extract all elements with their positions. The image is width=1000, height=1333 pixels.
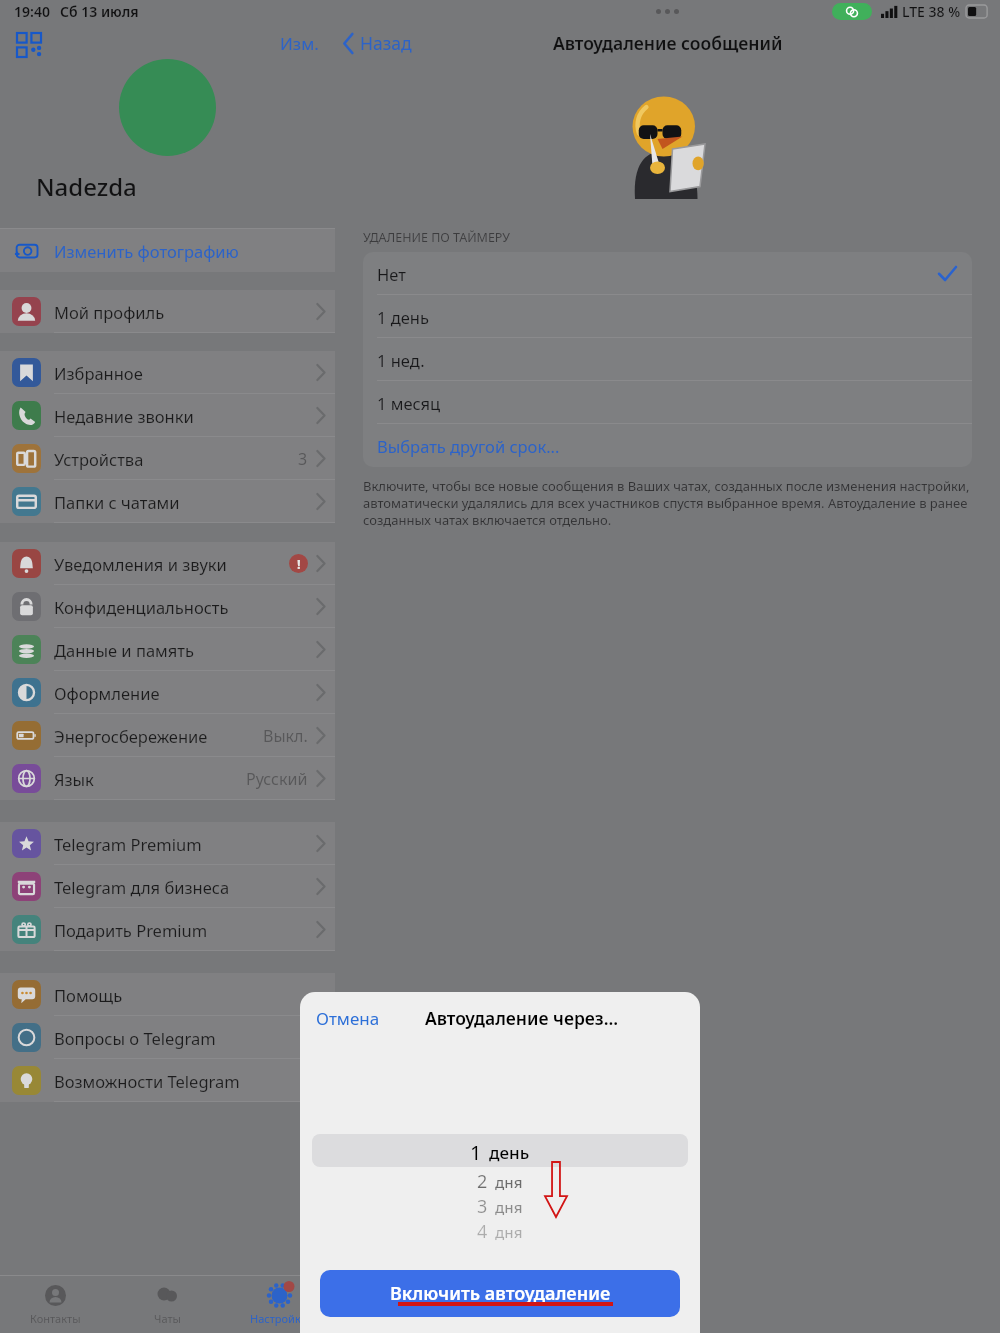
staticText: LTE 38 %	[902, 2, 961, 21]
button[interactable]: Контакты	[0, 1275, 111, 1333]
button[interactable]: 1 месяц	[363, 381, 972, 424]
button[interactable]: Уведомления и звуки	[0, 542, 335, 585]
staticText: 4	[477, 1219, 488, 1244]
button[interactable]: Чаты	[111, 1275, 223, 1333]
button[interactable]: Назад	[343, 31, 412, 55]
staticText: 3	[298, 448, 308, 470]
staticText: Изменить фотографию	[54, 240, 239, 262]
staticText: 1 месяц	[377, 392, 441, 414]
staticText: 1 нед.	[377, 349, 425, 371]
button[interactable]: 2	[477, 1169, 523, 1194]
staticText: 2	[477, 1169, 488, 1194]
staticText: Энергосбережение	[54, 725, 263, 747]
button[interactable]: Нет	[363, 252, 972, 295]
button[interactable]: Изменить фотографию	[0, 229, 335, 272]
button[interactable]: Настройки	[223, 1275, 335, 1333]
staticText: Включить автоудаление	[390, 1281, 611, 1306]
staticText: Контакты	[30, 1311, 81, 1326]
button[interactable]: Вопросы о Telegram	[0, 1016, 335, 1059]
staticText: Назад	[360, 31, 412, 55]
button[interactable]: Недавние звонки	[0, 394, 335, 437]
staticText: Помощь	[54, 984, 325, 1006]
button[interactable]: Папки с чатами	[0, 480, 335, 523]
staticText: 3	[477, 1194, 488, 1219]
staticText: 1 день	[377, 306, 429, 328]
button[interactable]: Избранное	[0, 351, 335, 394]
staticText: Nadezda	[36, 170, 137, 203]
button[interactable]: Отмена	[316, 1007, 380, 1030]
button[interactable]: Возможности Telegram	[0, 1059, 335, 1102]
staticText: Чаты	[154, 1311, 181, 1326]
button[interactable]: 4	[477, 1219, 523, 1244]
staticText: Уведомления и звуки	[54, 553, 289, 575]
staticText: дня	[495, 1222, 523, 1242]
staticText: Telegram Premium	[54, 833, 316, 855]
button[interactable]	[119, 59, 216, 156]
staticText: Язык	[54, 768, 246, 790]
staticText: Папки с чатами	[54, 491, 316, 513]
staticText: Автоудаление через...	[425, 1006, 619, 1030]
button[interactable]: Изм.	[280, 32, 319, 55]
staticText: дня	[495, 1172, 523, 1192]
staticText: 1	[470, 1139, 482, 1166]
button[interactable]: Мой профиль	[0, 290, 335, 333]
staticText: Выбрать другой срок...	[377, 435, 560, 457]
button[interactable]: Подарить Premium	[0, 908, 335, 951]
staticText: дня	[495, 1197, 523, 1217]
button[interactable]: Выбрать другой срок...	[363, 424, 972, 467]
staticText: Автоудаление сообщений	[553, 31, 783, 55]
button[interactable]: Telegram Premium	[0, 822, 335, 865]
staticText: !	[297, 555, 301, 573]
button[interactable]: Энергосбережение	[0, 714, 335, 757]
button[interactable]: Telegram для бизнеса	[0, 865, 335, 908]
button[interactable]: Оформление	[0, 671, 335, 714]
staticText: Русский	[246, 768, 308, 790]
staticText: Избранное	[54, 362, 316, 384]
button[interactable]: 1 день	[363, 295, 972, 338]
button[interactable]: Включить автоудаление	[320, 1270, 680, 1317]
staticText: Включите, чтобы все новые сообщения в Ва…	[363, 477, 970, 529]
button[interactable]: Устройства	[0, 437, 335, 480]
button[interactable]: Конфиденциальность	[0, 585, 335, 628]
staticText: Подарить Premium	[54, 919, 316, 941]
staticText: Нет	[377, 263, 406, 285]
button[interactable]: 1	[470, 1136, 530, 1169]
button[interactable]: 3	[477, 1194, 523, 1219]
staticText: Мой профиль	[54, 301, 316, 323]
staticText: Telegram для бизнеса	[54, 876, 316, 898]
staticText: Отмена	[316, 1007, 380, 1030]
staticText: Данные и память	[54, 639, 316, 661]
button[interactable]: Помощь	[0, 973, 335, 1016]
staticText: Сб 13 июля	[60, 2, 139, 21]
button[interactable]: Язык	[0, 757, 335, 800]
staticText: Конфиденциальность	[54, 596, 316, 618]
staticText: Изм.	[280, 32, 319, 55]
staticText: Настройки	[250, 1311, 308, 1326]
button[interactable]: Данные и память	[0, 628, 335, 671]
staticText: Возможности Telegram	[54, 1070, 325, 1092]
staticText: Вопросы о Telegram	[54, 1027, 325, 1049]
staticText: Недавние звонки	[54, 405, 316, 427]
button[interactable]: QR код	[14, 30, 44, 60]
staticText: УДАЛЕНИЕ ПО ТАЙМЕРУ	[363, 229, 510, 246]
staticText: Выкл.	[263, 725, 308, 747]
staticText: 19:40	[14, 2, 50, 21]
button[interactable]: 1 нед.	[363, 338, 972, 381]
staticText: Оформление	[54, 682, 316, 704]
staticText: Устройства	[54, 448, 298, 470]
staticText: день	[489, 1141, 530, 1164]
